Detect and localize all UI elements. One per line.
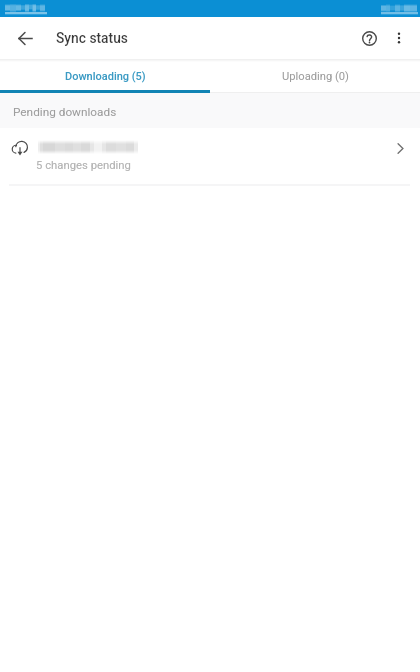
- staticText: Pending downloads: [13, 105, 117, 119]
- other: Show details: [390, 138, 410, 158]
- staticText: Downloading (5): [65, 70, 146, 83]
- button[interactable]: More options: [384, 19, 414, 57]
- button[interactable]: Downloading (5): [0, 59, 210, 93]
- button[interactable]: Uploading (0): [210, 59, 420, 93]
- button[interactable]: Navigate up: [8, 21, 42, 55]
- button[interactable]: 5 changes pending: [0, 128, 420, 184]
- staticText: Uploading (0): [282, 70, 349, 83]
- staticText: 5 changes pending: [36, 159, 131, 172]
- button[interactable]: Help: [354, 19, 384, 57]
- staticText: Sync status: [56, 30, 128, 46]
